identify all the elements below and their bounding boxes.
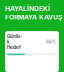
staticText: 68% (46, 39, 57, 45)
staticText: FORMAYA KAVUŞ (5, 13, 62, 21)
staticText: Günlük Hedef (7, 34, 22, 50)
staticText: HAYALİNDEKİ (5, 4, 50, 13)
